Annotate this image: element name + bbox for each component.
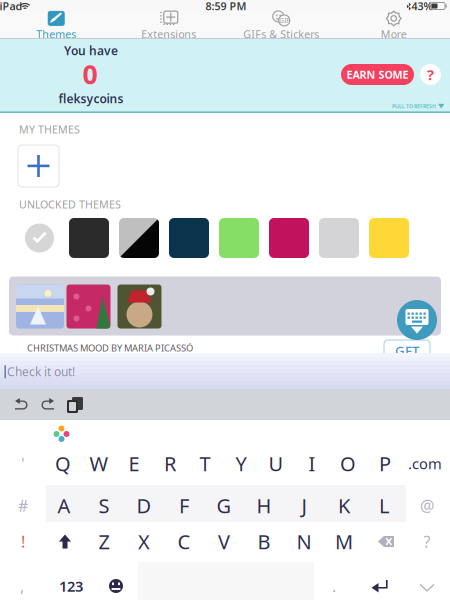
staticText: Y [235,450,246,477]
staticText: Q [55,450,71,477]
button[interactable]: Theme colour [269,218,309,258]
button[interactable]: Redo [37,397,59,413]
staticText: C [177,528,190,555]
staticText: iPad [0,0,22,13]
staticText: R [164,450,176,477]
staticText: GET [395,342,419,359]
staticText: ? [427,65,434,84]
button[interactable]: Hide keyboard [409,569,445,600]
staticText: W [89,450,108,477]
button[interactable]: Help [420,64,441,85]
button[interactable]: . [316,569,352,600]
staticText: ' [21,453,25,474]
button[interactable]: H [246,488,282,522]
button[interactable]: W [81,446,117,480]
button[interactable]: Return [361,569,397,600]
button[interactable]: Extensions [112,12,225,39]
button[interactable]: V [206,524,242,558]
button[interactable]: T [187,446,223,480]
staticText: A [57,492,70,519]
button[interactable]: L [366,488,402,522]
staticText: P [379,450,391,477]
staticText: MY THEMES [19,122,80,136]
staticText: UNLOCKED THEMES [19,197,121,211]
button[interactable]: Theme colour [119,218,159,258]
button[interactable]: G [206,488,242,522]
staticText: CHRISTMAS MOOD BY MARIA PICASSÓ [27,342,193,354]
button[interactable]: ? [409,524,445,558]
button[interactable]: Shift [47,524,83,558]
staticText: B [257,528,270,555]
button[interactable]: U [258,446,294,480]
staticText: J [301,492,306,519]
button[interactable]: S [86,488,122,522]
button[interactable]: J [286,488,322,522]
button[interactable]: F [166,488,202,522]
staticText: .com [408,454,442,473]
staticText: ! [21,531,25,552]
button[interactable]: K [326,488,362,522]
button[interactable]: Theme colour [69,218,109,258]
button[interactable]: # [5,488,41,522]
button[interactable]: Q [45,446,81,480]
button[interactable]: Themes [0,12,112,39]
button[interactable]: Theme colour [169,218,209,258]
staticText: S [98,492,109,519]
button[interactable]: Delete [368,524,404,558]
button[interactable]: More [337,12,450,39]
button[interactable]: D [126,488,162,522]
button[interactable]: X [126,524,162,558]
staticText: GIFs & Stickers [243,27,319,41]
staticText: X [138,528,150,555]
button[interactable]: Dismiss keyboard [397,300,437,340]
button[interactable]: GIF [225,12,337,39]
staticText: GIF [279,16,289,25]
button[interactable]: Undo [10,397,32,413]
staticText: N [296,528,311,555]
staticText: Z [98,528,109,555]
staticText: I [308,450,315,477]
button[interactable]: R [152,446,188,480]
staticText: 8:59 PM [205,0,246,13]
button[interactable]: GET [384,340,430,361]
button[interactable]: EARN SOME [341,64,414,85]
button[interactable]: P [367,446,403,480]
staticText: More [381,27,407,41]
staticText: Themes [36,27,76,41]
button[interactable]: B [246,524,282,558]
button[interactable]: M [326,524,362,558]
button[interactable]: ! [5,524,41,558]
button[interactable]: C [166,524,202,558]
staticText: U [268,450,283,477]
button[interactable]: Theme colour [319,218,359,258]
button[interactable]: Y [223,446,259,480]
staticText: L [379,492,389,519]
button[interactable]: , [4,569,40,600]
button[interactable]: Paste [66,396,84,414]
button[interactable]: ' [5,446,41,480]
button[interactable]: Emoji [98,569,134,600]
button[interactable]: .com [407,446,443,480]
button[interactable]: Theme colour [219,218,259,258]
button[interactable]: @ [409,488,445,522]
staticText: V [218,528,230,555]
staticText: ? [423,531,430,552]
button[interactable]: Add theme [18,145,59,187]
staticText: , [20,575,24,597]
button[interactable]: 123 [53,569,89,600]
button[interactable]: Christmas Mood theme [9,276,441,335]
staticText: M [335,528,353,555]
staticText: 123 [59,576,83,596]
button[interactable]: Theme colour [369,218,409,258]
button[interactable]: E [116,446,152,480]
button[interactable]: A [46,488,82,522]
staticText: F [179,492,189,519]
button[interactable]: I [294,446,330,480]
staticText: K [338,492,350,519]
button[interactable]: O [330,446,366,480]
staticText: E [128,450,139,477]
button[interactable]: Z [86,524,122,558]
staticText: H [256,492,271,519]
button[interactable]: N [286,524,322,558]
